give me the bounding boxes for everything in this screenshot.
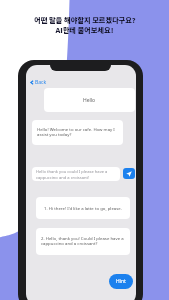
staticText: Hello thank you could I please have a ca… [36, 169, 108, 180]
staticText: Hint [116, 278, 126, 285]
staticText: 1. Hi there! I'd like a latte to go, ple… [44, 205, 122, 211]
staticText: Hello [83, 97, 96, 104]
staticText: Back [35, 79, 47, 86]
button[interactable]: Hint [109, 274, 133, 289]
button[interactable]: Send [123, 168, 135, 179]
button[interactable]: Back [30, 79, 46, 86]
staticText: 2. Hello, thank you! Could I please have… [41, 235, 124, 247]
staticText: Hello! Welcome to our cafe. How may I as… [37, 126, 115, 138]
button[interactable]: Hello thank you could I please have a ca… [32, 167, 120, 181]
button[interactable]: 1. Hi there! I'd like a latte to go, ple… [36, 197, 130, 219]
button[interactable]: 2. Hello, thank you! Could I please have… [36, 228, 130, 255]
staticText: AI한테 물어보세요! [55, 25, 114, 35]
staticText: 어떤 말을 해야할지 모르겠다구요? [34, 15, 136, 25]
